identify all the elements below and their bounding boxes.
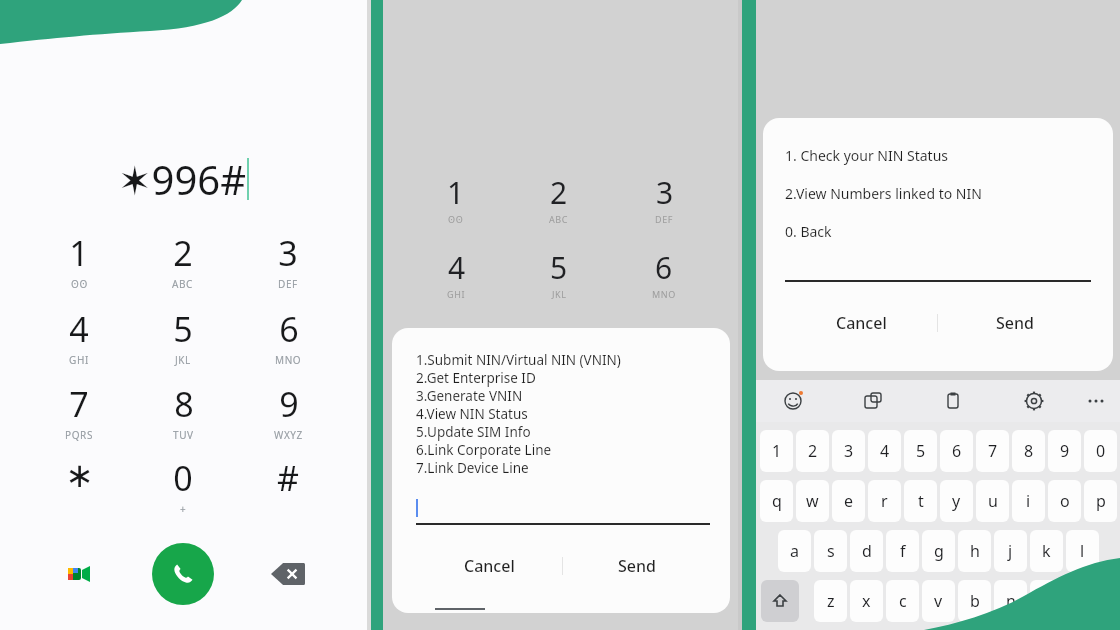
button[interactable]: 2 (137, 230, 229, 292)
button[interactable]: l (1066, 530, 1099, 572)
button[interactable]: y (940, 480, 973, 522)
button[interactable]: 0 (1084, 430, 1117, 472)
staticText: 5 (550, 247, 568, 288)
button[interactable]: e (832, 480, 865, 522)
button[interactable]: Clipboard (936, 384, 970, 418)
button[interactable]: x (850, 580, 883, 622)
button[interactable]: d (850, 530, 883, 572)
staticText: TUV (173, 428, 194, 442)
staticText: n (1006, 590, 1016, 612)
button[interactable]: 4 (411, 247, 501, 305)
button[interactable]: Cancel (785, 304, 937, 342)
button[interactable]: ∗ (33, 455, 125, 517)
staticText: WXYZ (274, 428, 303, 442)
button[interactable]: n (994, 580, 1027, 622)
staticText: t (918, 490, 924, 512)
staticText: z (827, 590, 835, 612)
staticText: k (1042, 540, 1051, 562)
staticText: 2 (550, 172, 568, 213)
button[interactable]: m (1030, 580, 1063, 622)
button[interactable]: Send (563, 547, 710, 585)
button[interactable]: w (796, 480, 829, 522)
button[interactable]: p (1084, 480, 1117, 522)
button[interactable]: 6 (242, 306, 334, 368)
button[interactable]: 2 (514, 172, 604, 230)
button[interactable]: Translate (856, 384, 890, 418)
staticText: MNO (652, 288, 676, 300)
button[interactable]: k (1030, 530, 1063, 572)
staticText: GHI (447, 288, 466, 300)
staticText: Cancel (836, 312, 887, 334)
button[interactable]: g (922, 530, 955, 572)
staticText: 2 (173, 230, 193, 276)
staticText: o (1060, 490, 1070, 512)
button[interactable]: 8 (137, 381, 229, 443)
button[interactable]: 1 (33, 230, 125, 292)
staticText: d (862, 540, 872, 562)
button[interactable]: v (922, 580, 955, 622)
button[interactable]: 7 (33, 381, 125, 443)
button[interactable]: Shift (761, 580, 799, 622)
staticText: 8 (1024, 440, 1034, 462)
button[interactable]: Send (938, 304, 1091, 342)
button[interactable]: 6 (619, 247, 709, 305)
button[interactable]: h (958, 530, 991, 572)
button[interactable]: 5 (514, 247, 604, 305)
button[interactable]: o (1048, 480, 1081, 522)
button[interactable]: f (886, 530, 919, 572)
staticText: 5 (916, 440, 926, 462)
staticText: y (952, 490, 961, 512)
button[interactable]: 5 (137, 306, 229, 368)
button[interactable]: q (760, 480, 793, 522)
staticText: 6 (655, 247, 673, 288)
button[interactable]: 9 (242, 381, 334, 443)
staticText: 6 (952, 440, 962, 462)
button[interactable]: u (976, 480, 1009, 522)
button[interactable]: Cancel (416, 547, 562, 585)
button[interactable]: j (994, 530, 1027, 572)
staticText: JKL (552, 288, 567, 300)
staticText: j (1008, 540, 1013, 562)
button[interactable]: 0 (137, 455, 229, 517)
button[interactable]: a (778, 530, 811, 572)
button[interactable]: 4 (33, 306, 125, 368)
button[interactable]: 6 (940, 430, 973, 472)
staticText: r (881, 490, 888, 512)
button[interactable]: Video call (55, 550, 103, 598)
button[interactable]: i (1012, 480, 1045, 522)
button[interactable]: 3 (832, 430, 865, 472)
button[interactable]: 4 (868, 430, 901, 472)
staticText: w (806, 490, 819, 512)
staticText: 4 (448, 247, 466, 288)
button[interactable]: 3 (242, 230, 334, 292)
button[interactable]: 1 (760, 430, 793, 472)
button[interactable]: 8 (1012, 430, 1045, 472)
button[interactable]: 3 (619, 172, 709, 230)
staticText: i (1026, 490, 1031, 512)
staticText: p (1096, 490, 1106, 512)
button[interactable]: 1 (411, 172, 501, 230)
staticText: 9 (279, 381, 299, 427)
button[interactable]: b (958, 580, 991, 622)
button[interactable]: 7 (976, 430, 1009, 472)
staticText: ʘʘ (71, 277, 88, 291)
staticText: q (772, 490, 782, 512)
button[interactable]: Call (152, 543, 214, 605)
staticText: e (844, 490, 854, 512)
button[interactable]: More options (1079, 384, 1113, 418)
button[interactable]: 2 (796, 430, 829, 472)
button[interactable]: Emoji (776, 384, 810, 418)
button[interactable]: c (886, 580, 919, 622)
button[interactable]: z (814, 580, 847, 622)
button[interactable]: Backspace (264, 553, 312, 595)
button[interactable]: # (242, 455, 334, 517)
staticText: DEF (278, 277, 298, 291)
staticText: 3 (656, 172, 674, 213)
button[interactable]: s (814, 530, 847, 572)
staticText: 5 (173, 306, 193, 352)
button[interactable]: r (868, 480, 901, 522)
button[interactable]: Settings (1017, 384, 1051, 418)
button[interactable]: 9 (1048, 430, 1081, 472)
button[interactable]: t (904, 480, 937, 522)
button[interactable]: 5 (904, 430, 937, 472)
